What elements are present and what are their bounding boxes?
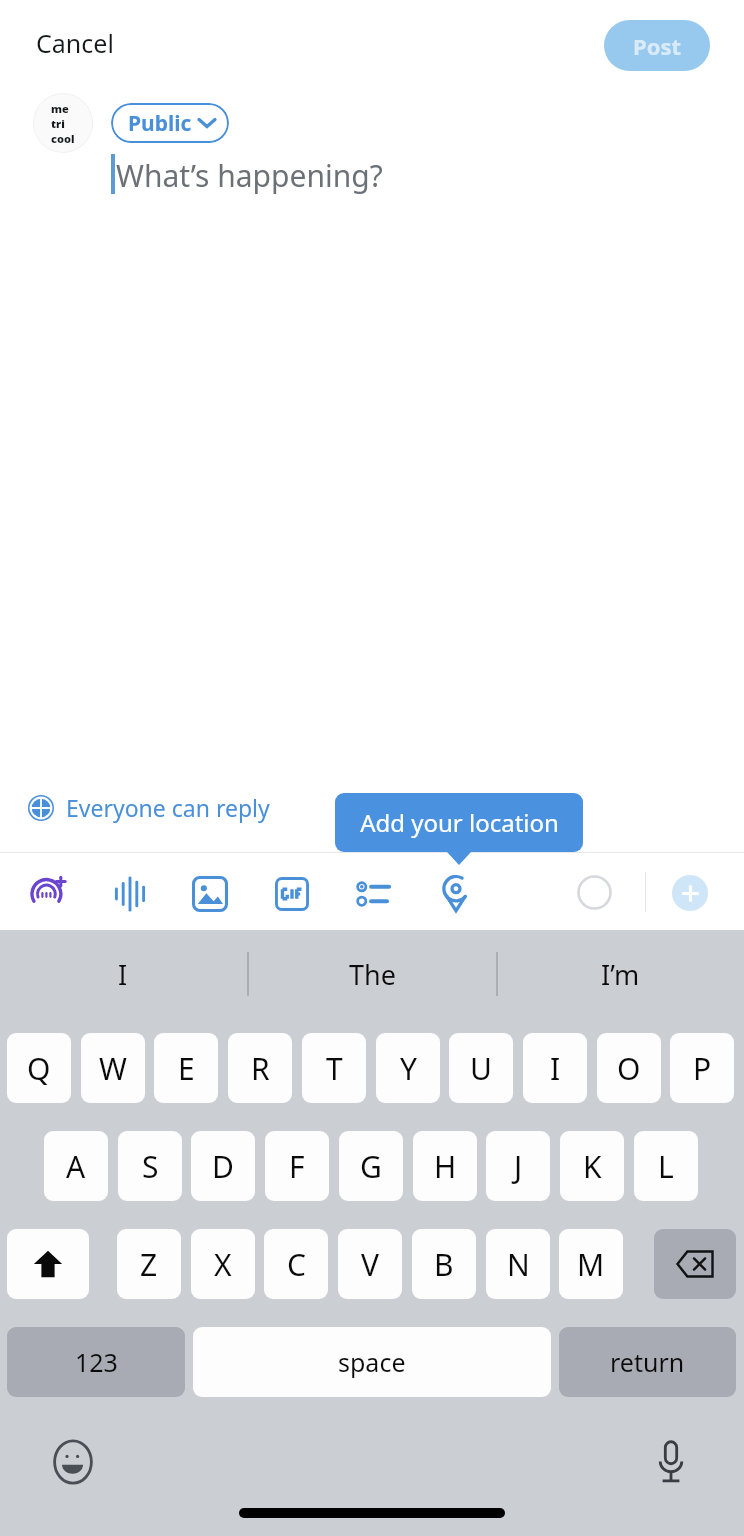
staticText: H [434, 1146, 457, 1187]
button[interactable]: Y [376, 1033, 440, 1103]
staticText: P [693, 1048, 712, 1089]
staticText: A [66, 1146, 86, 1187]
staticText: I’m [601, 956, 640, 993]
button[interactable]: I [523, 1033, 587, 1103]
staticText: B [434, 1244, 454, 1285]
staticText: D [212, 1146, 234, 1187]
staticText: F [289, 1146, 305, 1187]
staticText: G [360, 1146, 382, 1187]
staticText: What’s happening? [116, 155, 383, 196]
staticText: T [326, 1048, 343, 1089]
button[interactable]: Z [117, 1229, 181, 1299]
button[interactable]: J [486, 1131, 550, 1201]
button[interactable]: H [413, 1131, 477, 1201]
button[interactable]: C [264, 1229, 328, 1299]
button[interactable]: Everyone can reply [18, 786, 280, 829]
button[interactable]: Q [7, 1033, 71, 1103]
button[interactable]: K [560, 1131, 624, 1201]
staticText: L [658, 1146, 674, 1187]
button[interactable]: GIF [264, 866, 320, 922]
button[interactable]: The [282, 943, 462, 1005]
staticText: tri [51, 116, 65, 131]
button[interactable]: B [412, 1229, 476, 1299]
button[interactable]: O [597, 1033, 661, 1103]
staticText: U [470, 1048, 492, 1089]
staticText: Everyone can reply [66, 792, 270, 823]
button[interactable]: Shift [7, 1229, 89, 1299]
staticText: Add your location [360, 806, 559, 839]
button[interactable]: Public [111, 103, 229, 143]
button[interactable]: L [634, 1131, 698, 1201]
button[interactable]: Dictation [644, 1435, 698, 1489]
staticText: R [251, 1048, 270, 1089]
staticText: K [583, 1146, 602, 1187]
button[interactable]: I [33, 943, 213, 1005]
staticText: I [550, 1048, 561, 1089]
button[interactable]: X [191, 1229, 255, 1299]
button[interactable]: space [193, 1327, 551, 1397]
button[interactable]: Emoji [46, 1435, 100, 1489]
staticText: Post [633, 31, 682, 61]
staticText: V [361, 1244, 379, 1285]
staticText: N [507, 1244, 530, 1285]
button[interactable]: Add post [672, 875, 708, 911]
button[interactable]: P [670, 1033, 734, 1103]
staticText: Cancel [36, 26, 114, 60]
button[interactable]: M [559, 1229, 623, 1299]
staticText: Z [140, 1244, 158, 1285]
staticText: X [214, 1244, 232, 1285]
button[interactable]: I’m [530, 943, 710, 1005]
button[interactable]: S [118, 1131, 182, 1201]
staticText: Q [27, 1048, 51, 1089]
button[interactable]: Profile [33, 93, 93, 153]
staticText: space [338, 1345, 406, 1379]
staticText: C [287, 1244, 306, 1285]
button[interactable]: U [449, 1033, 513, 1103]
staticText: return [610, 1345, 685, 1379]
button[interactable]: Backspace [654, 1229, 736, 1299]
button[interactable]: Media [182, 866, 238, 922]
button[interactable]: G [339, 1131, 403, 1201]
staticText: 123 [75, 1345, 118, 1379]
button[interactable]: Voice [102, 866, 158, 922]
staticText: me [51, 101, 69, 116]
staticText: E [178, 1048, 195, 1089]
button[interactable]: 123 [7, 1327, 185, 1397]
button[interactable]: V [338, 1229, 402, 1299]
staticText: W [99, 1048, 127, 1089]
staticText: O [617, 1048, 641, 1089]
button[interactable]: Cancel [24, 20, 126, 66]
button[interactable]: Grok [20, 866, 76, 922]
staticText: J [514, 1146, 523, 1187]
button[interactable]: W [81, 1033, 145, 1103]
button[interactable]: T [302, 1033, 366, 1103]
button[interactable]: E [154, 1033, 218, 1103]
staticText: Public [128, 109, 192, 138]
button[interactable]: Poll [346, 866, 402, 922]
staticText: cool [51, 131, 75, 146]
button[interactable]: N [486, 1229, 550, 1299]
staticText: The [349, 956, 396, 993]
button[interactable]: F [265, 1131, 329, 1201]
button[interactable]: return [559, 1327, 736, 1397]
button[interactable]: Add your location [428, 866, 484, 922]
button[interactable]: D [191, 1131, 255, 1201]
button[interactable]: Post [604, 20, 710, 71]
staticText: S [142, 1146, 159, 1187]
staticText: M [577, 1244, 605, 1285]
button[interactable]: Add your location [335, 793, 583, 852]
staticText: Y [400, 1048, 417, 1089]
button[interactable]: A [44, 1131, 108, 1201]
button[interactable]: R [228, 1033, 292, 1103]
staticText: I [118, 956, 128, 993]
